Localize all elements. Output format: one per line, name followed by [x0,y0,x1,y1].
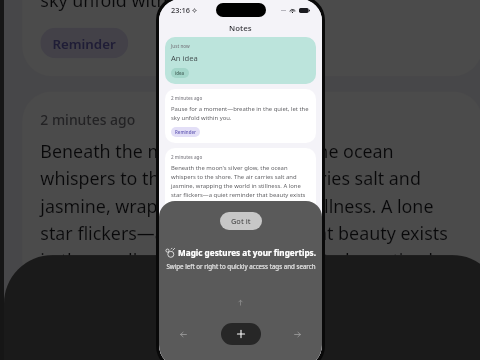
staticText: Got it [231,216,251,226]
button[interactable]: Previous [176,327,191,342]
button[interactable]: Just now [165,37,316,84]
button[interactable]: New note [221,323,261,345]
staticText: Reminder [175,129,196,135]
staticText: Swipe left or right to quickly access ta… [166,262,316,270]
staticText: idea [175,70,185,76]
staticText: Notes [229,23,252,34]
staticText: 2 minutes ago [40,110,137,128]
staticText: Got it [222,300,283,331]
staticText: 23:16 [171,5,190,15]
button[interactable]: 2 minutes ago [22,91,480,291]
staticText: Pause for a moment—breathe in the quiet,… [171,105,310,122]
button[interactable]: Got it [220,212,262,230]
button[interactable]: 2 minutes ago [165,148,316,214]
button[interactable]: Reminder [40,28,128,58]
button[interactable]: idea [171,68,189,78]
button[interactable]: Reminder [171,127,200,137]
button[interactable]: Next [290,327,305,342]
staticText: Magic gestures at your fingertips. [178,247,317,258]
button[interactable]: 2 minutes ago [22,0,480,76]
staticText: Pause for a moment—breathe in the quiet,… [40,0,465,13]
staticText: An idea [171,53,198,63]
staticText: 2 minutes ago [171,154,203,160]
button[interactable]: Got it [189,288,316,343]
staticText: Just now [171,43,190,49]
staticText: Beneath the moon's silver glow, the ocea… [171,164,310,208]
staticText: Reminder [52,34,116,52]
staticText: Beneath the moon's silver glow, the ocea… [40,140,465,273]
button[interactable]: 2 minutes ago [165,89,316,143]
staticText: 2 minutes ago [171,95,203,101]
